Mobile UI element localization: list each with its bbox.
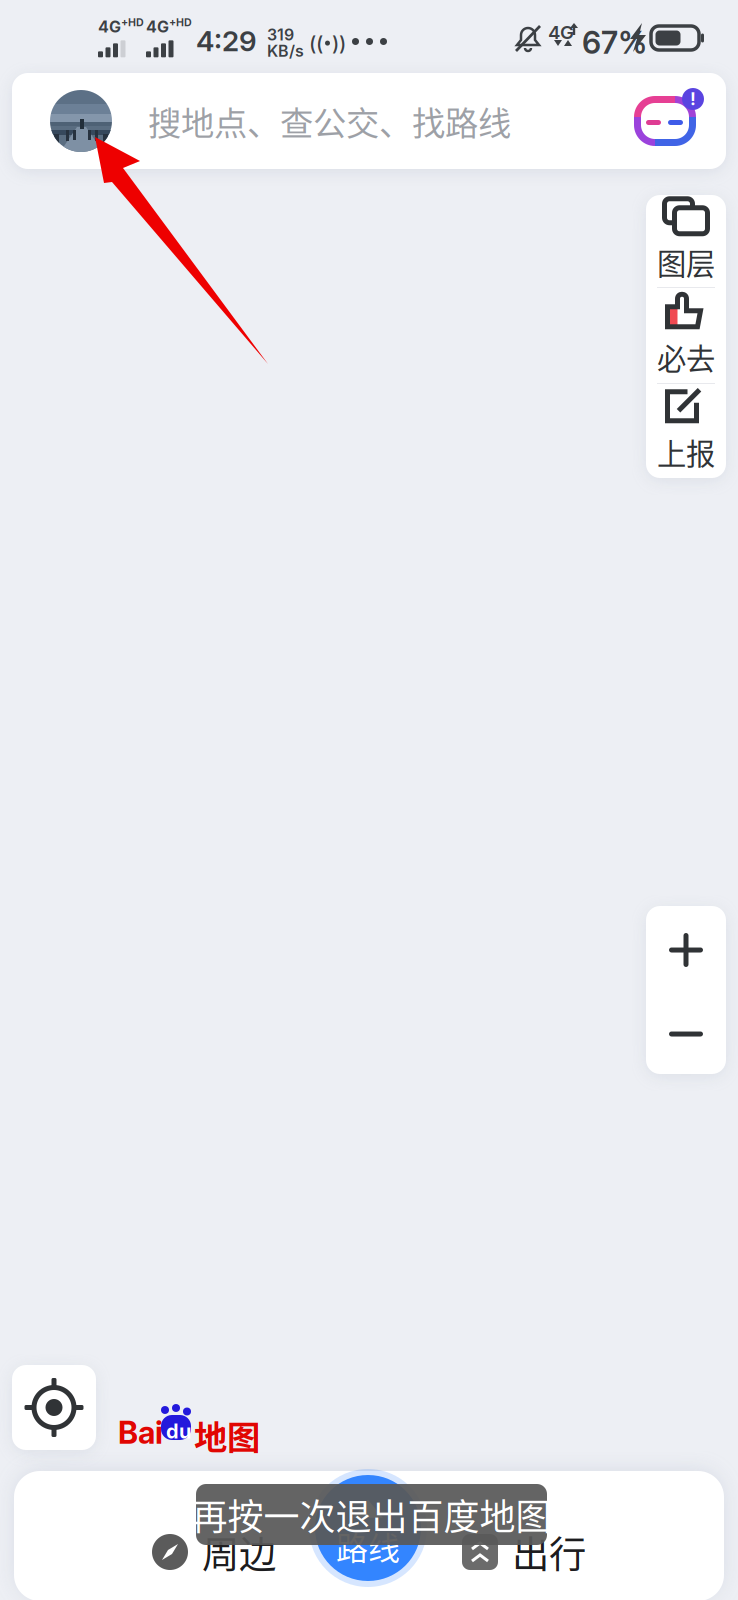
staticText: 再按一次退出百度地图 [191,1488,551,1540]
button[interactable]: Zoom in [646,906,726,994]
button[interactable]: 图层 [646,195,726,287]
staticText: 67% [582,24,647,61]
staticText: 图层 [657,241,715,283]
button[interactable]: Zoom out [646,994,726,1074]
staticText: 4G [548,21,574,44]
button[interactable]: 必去 [646,288,726,383]
staticText: KB/s [267,41,304,61]
staticText: +HD [169,16,192,29]
staticText: Bai [118,1414,163,1451]
staticText: du [166,1419,191,1443]
button[interactable]: 出行 [404,1515,644,1589]
staticText: )) [332,31,346,55]
staticText: 出行 [512,1525,586,1579]
button[interactable]: Locate me [12,1365,96,1450]
button[interactable]: 路线 [309,1469,427,1587]
staticText: 4G [146,17,169,36]
staticText: (( [309,31,323,55]
staticText: 地图 [194,1411,260,1459]
staticText: 周边 [202,1525,276,1579]
staticText: 上报 [657,431,715,473]
button[interactable]: 搜地点、查公交、找路线 [12,73,726,169]
staticText: 路线 [336,1523,400,1569]
button[interactable]: 周边 [94,1515,334,1589]
button[interactable]: 上报 [646,384,726,478]
staticText: ! [690,88,696,109]
staticText: 4G [98,17,121,36]
staticText: 搜地点、查公交、找路线 [148,97,511,145]
staticText: 必去 [657,336,715,378]
staticText: 4:29 [196,24,257,58]
staticText: +HD [121,16,144,29]
staticText: 319 [267,25,294,44]
